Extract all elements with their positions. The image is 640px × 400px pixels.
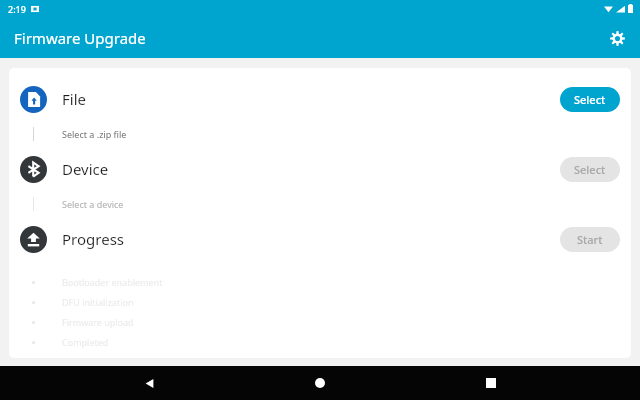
- staticText: Select a device: [62, 198, 124, 210]
- staticText: Progress: [62, 229, 124, 249]
- button[interactable]: Progress: [9, 217, 631, 261]
- staticText: Firmware Upgrade: [14, 28, 146, 48]
- staticText: Firmware upload: [62, 316, 134, 328]
- staticText: Select: [574, 92, 606, 107]
- button[interactable]: Home: [298, 366, 342, 400]
- button[interactable]: Device: [9, 147, 631, 191]
- staticText: Device: [62, 159, 109, 179]
- button[interactable]: Start: [560, 227, 620, 252]
- staticText: 2:19: [8, 3, 26, 15]
- button[interactable]: Back: [127, 366, 171, 400]
- staticText: File: [62, 89, 86, 109]
- button[interactable]: File: [9, 77, 631, 121]
- button[interactable]: Select: [560, 157, 620, 182]
- button[interactable]: Select: [560, 87, 620, 112]
- button[interactable]: Settings: [602, 23, 632, 53]
- staticText: DFU initialization: [62, 296, 134, 308]
- staticText: Start: [577, 232, 603, 247]
- staticText: Completed: [62, 336, 109, 348]
- staticText: Select: [574, 162, 606, 177]
- staticText: Bootloader enablement: [62, 276, 163, 288]
- staticText: Select a .zip file: [62, 128, 127, 140]
- button[interactable]: Recent apps: [469, 366, 513, 400]
